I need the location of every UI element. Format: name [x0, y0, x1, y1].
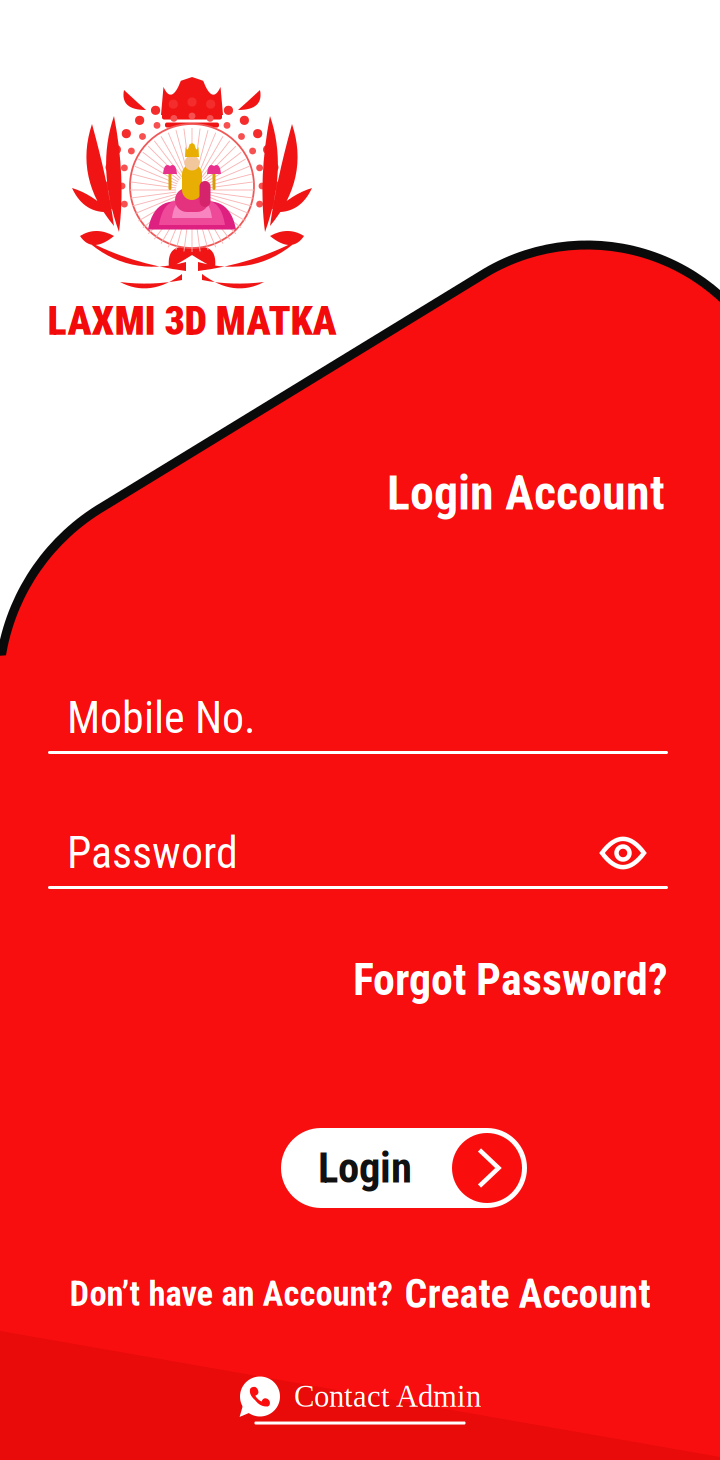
- staticText: Mobile No.: [67, 692, 256, 744]
- button[interactable]: Mobile No.: [48, 692, 687, 754]
- staticText: Contact Admin: [294, 1379, 481, 1413]
- staticText: Password: [67, 827, 238, 879]
- staticText: Don’t have an Account?: [69, 1274, 393, 1314]
- staticText: Create Account: [404, 1271, 650, 1317]
- button[interactable]: Create Account: [404, 1271, 650, 1317]
- button[interactable]: Password: [48, 827, 687, 889]
- button[interactable]: Contact Admin: [239, 1375, 481, 1424]
- staticText: Forgot Password?: [353, 954, 668, 1006]
- staticText: LAXMI 3D MATKA: [47, 298, 336, 344]
- button[interactable]: Login: [281, 1128, 527, 1208]
- staticText: Login: [318, 1143, 412, 1193]
- staticText: Login Account: [387, 465, 665, 521]
- button[interactable]: Forgot Password?: [348, 956, 668, 1004]
